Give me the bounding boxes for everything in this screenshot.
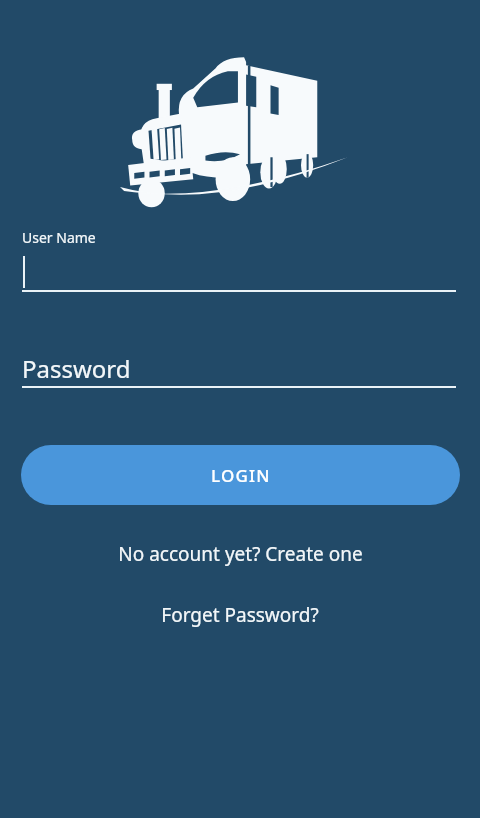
button[interactable] xyxy=(22,252,456,292)
button[interactable]: Forget Password? xyxy=(0,597,480,633)
staticText: Forget Password? xyxy=(161,602,319,628)
button[interactable]: No account yet? Create one xyxy=(0,536,480,572)
staticText: LOGIN xyxy=(211,464,271,487)
staticText: Password xyxy=(22,352,131,385)
staticText: User Name xyxy=(22,228,96,247)
other: Truck logo xyxy=(118,40,362,212)
button[interactable]: LOGIN xyxy=(21,445,460,505)
button[interactable]: Password xyxy=(22,348,456,388)
staticText: No account yet? Create one xyxy=(118,541,363,567)
